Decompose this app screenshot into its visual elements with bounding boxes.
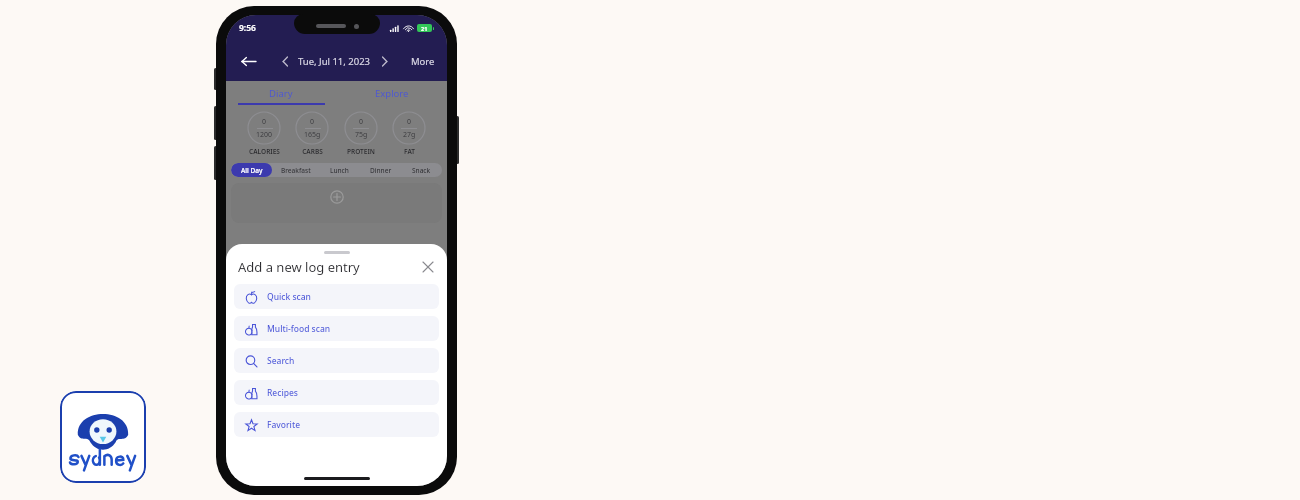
button[interactable]: Back — [236, 49, 260, 73]
staticText: 21 — [421, 25, 428, 32]
staticText: Favorite — [267, 419, 301, 431]
staticText: 165g — [304, 130, 321, 140]
staticText: All Day — [241, 166, 263, 175]
staticText: 1200 — [256, 130, 273, 140]
button[interactable]: Diary — [226, 81, 336, 105]
staticText: 0 — [407, 117, 412, 127]
button[interactable]: Explore — [336, 81, 447, 105]
button[interactable]: More — [409, 55, 437, 68]
staticText: More — [411, 55, 435, 68]
staticText: PROTEIN — [347, 147, 375, 156]
staticText: Multi-food scan — [267, 323, 331, 335]
button[interactable]: Snack — [401, 163, 442, 177]
staticText: 0 — [359, 117, 364, 127]
staticText: Quick scan — [267, 291, 311, 303]
button[interactable]: Quick scan — [234, 284, 439, 309]
staticText: 0 — [310, 117, 315, 127]
button[interactable]: Dinner — [360, 163, 401, 177]
staticText: 0 — [262, 117, 267, 127]
button[interactable]: All Day — [231, 163, 272, 177]
staticText: Lunch — [330, 166, 349, 175]
button[interactable]: Close — [419, 258, 437, 276]
staticText: Tue, Jul 11, 2023 — [298, 55, 371, 68]
staticText: Recipes — [267, 387, 298, 399]
button[interactable]: Sydney logo — [60, 391, 146, 483]
staticText: Explore — [375, 87, 409, 100]
staticText: Breakfast — [281, 166, 311, 175]
staticText: Search — [267, 355, 295, 367]
button[interactable]: Next day — [375, 52, 393, 70]
staticText: Diary — [269, 87, 293, 100]
staticText: 27g — [403, 130, 416, 140]
staticText: Add a new log entry — [238, 258, 360, 276]
button[interactable]: Lunch — [319, 163, 360, 177]
staticText: 9:56 — [239, 22, 256, 34]
button[interactable]: Breakfast — [272, 163, 319, 177]
button[interactable]: Search — [234, 348, 439, 373]
staticText: Snack — [412, 166, 431, 175]
staticText: Dinner — [370, 166, 392, 175]
staticText: CALORIES — [249, 147, 280, 156]
button[interactable]: Recipes — [234, 380, 439, 405]
staticText: CARBS — [302, 147, 323, 156]
staticText: FAT — [404, 147, 415, 156]
button[interactable]: Favorite — [234, 412, 439, 437]
button[interactable]: Previous day — [276, 52, 294, 70]
button[interactable]: Multi-food scan — [234, 316, 439, 341]
staticText: 75g — [355, 130, 368, 140]
